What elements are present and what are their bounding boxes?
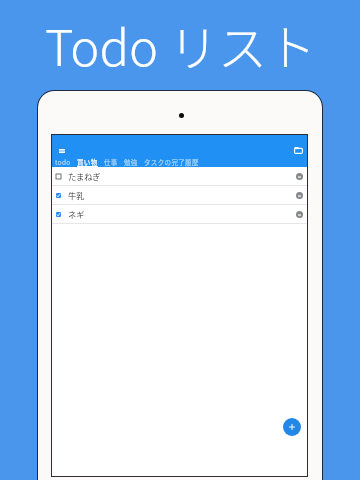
staticText: 牛乳 — [68, 189, 85, 201]
button[interactable]: 仕事 — [104, 156, 118, 167]
staticText: 買い物 — [77, 157, 98, 166]
button[interactable]: たまねぎ — [52, 167, 307, 185]
button[interactable]: Completed task history — [293, 145, 304, 156]
button[interactable]: 買い物 — [77, 156, 98, 167]
button[interactable]: Remove item — [296, 173, 303, 180]
button[interactable]: ネギ — [52, 205, 307, 223]
button[interactable]: Remove item — [296, 192, 303, 199]
staticText: 仕事 — [104, 157, 118, 166]
staticText: todo — [55, 157, 71, 166]
staticText: タスクの完了履歴 — [144, 157, 199, 166]
staticText: たまねぎ — [68, 170, 101, 182]
button[interactable]: タスクの完了履歴 — [144, 156, 199, 167]
button[interactable]: 勉強 — [124, 156, 138, 167]
button[interactable]: todo — [55, 156, 71, 167]
button[interactable]: 牛乳 — [52, 186, 307, 204]
staticText: 勉強 — [124, 157, 138, 166]
button[interactable]: Add task — [283, 418, 301, 436]
button[interactable]: Remove item — [296, 211, 303, 218]
staticText: ネギ — [68, 208, 85, 220]
staticText: Todo リスト — [45, 9, 316, 80]
button[interactable]: Open navigation menu — [56, 145, 67, 156]
